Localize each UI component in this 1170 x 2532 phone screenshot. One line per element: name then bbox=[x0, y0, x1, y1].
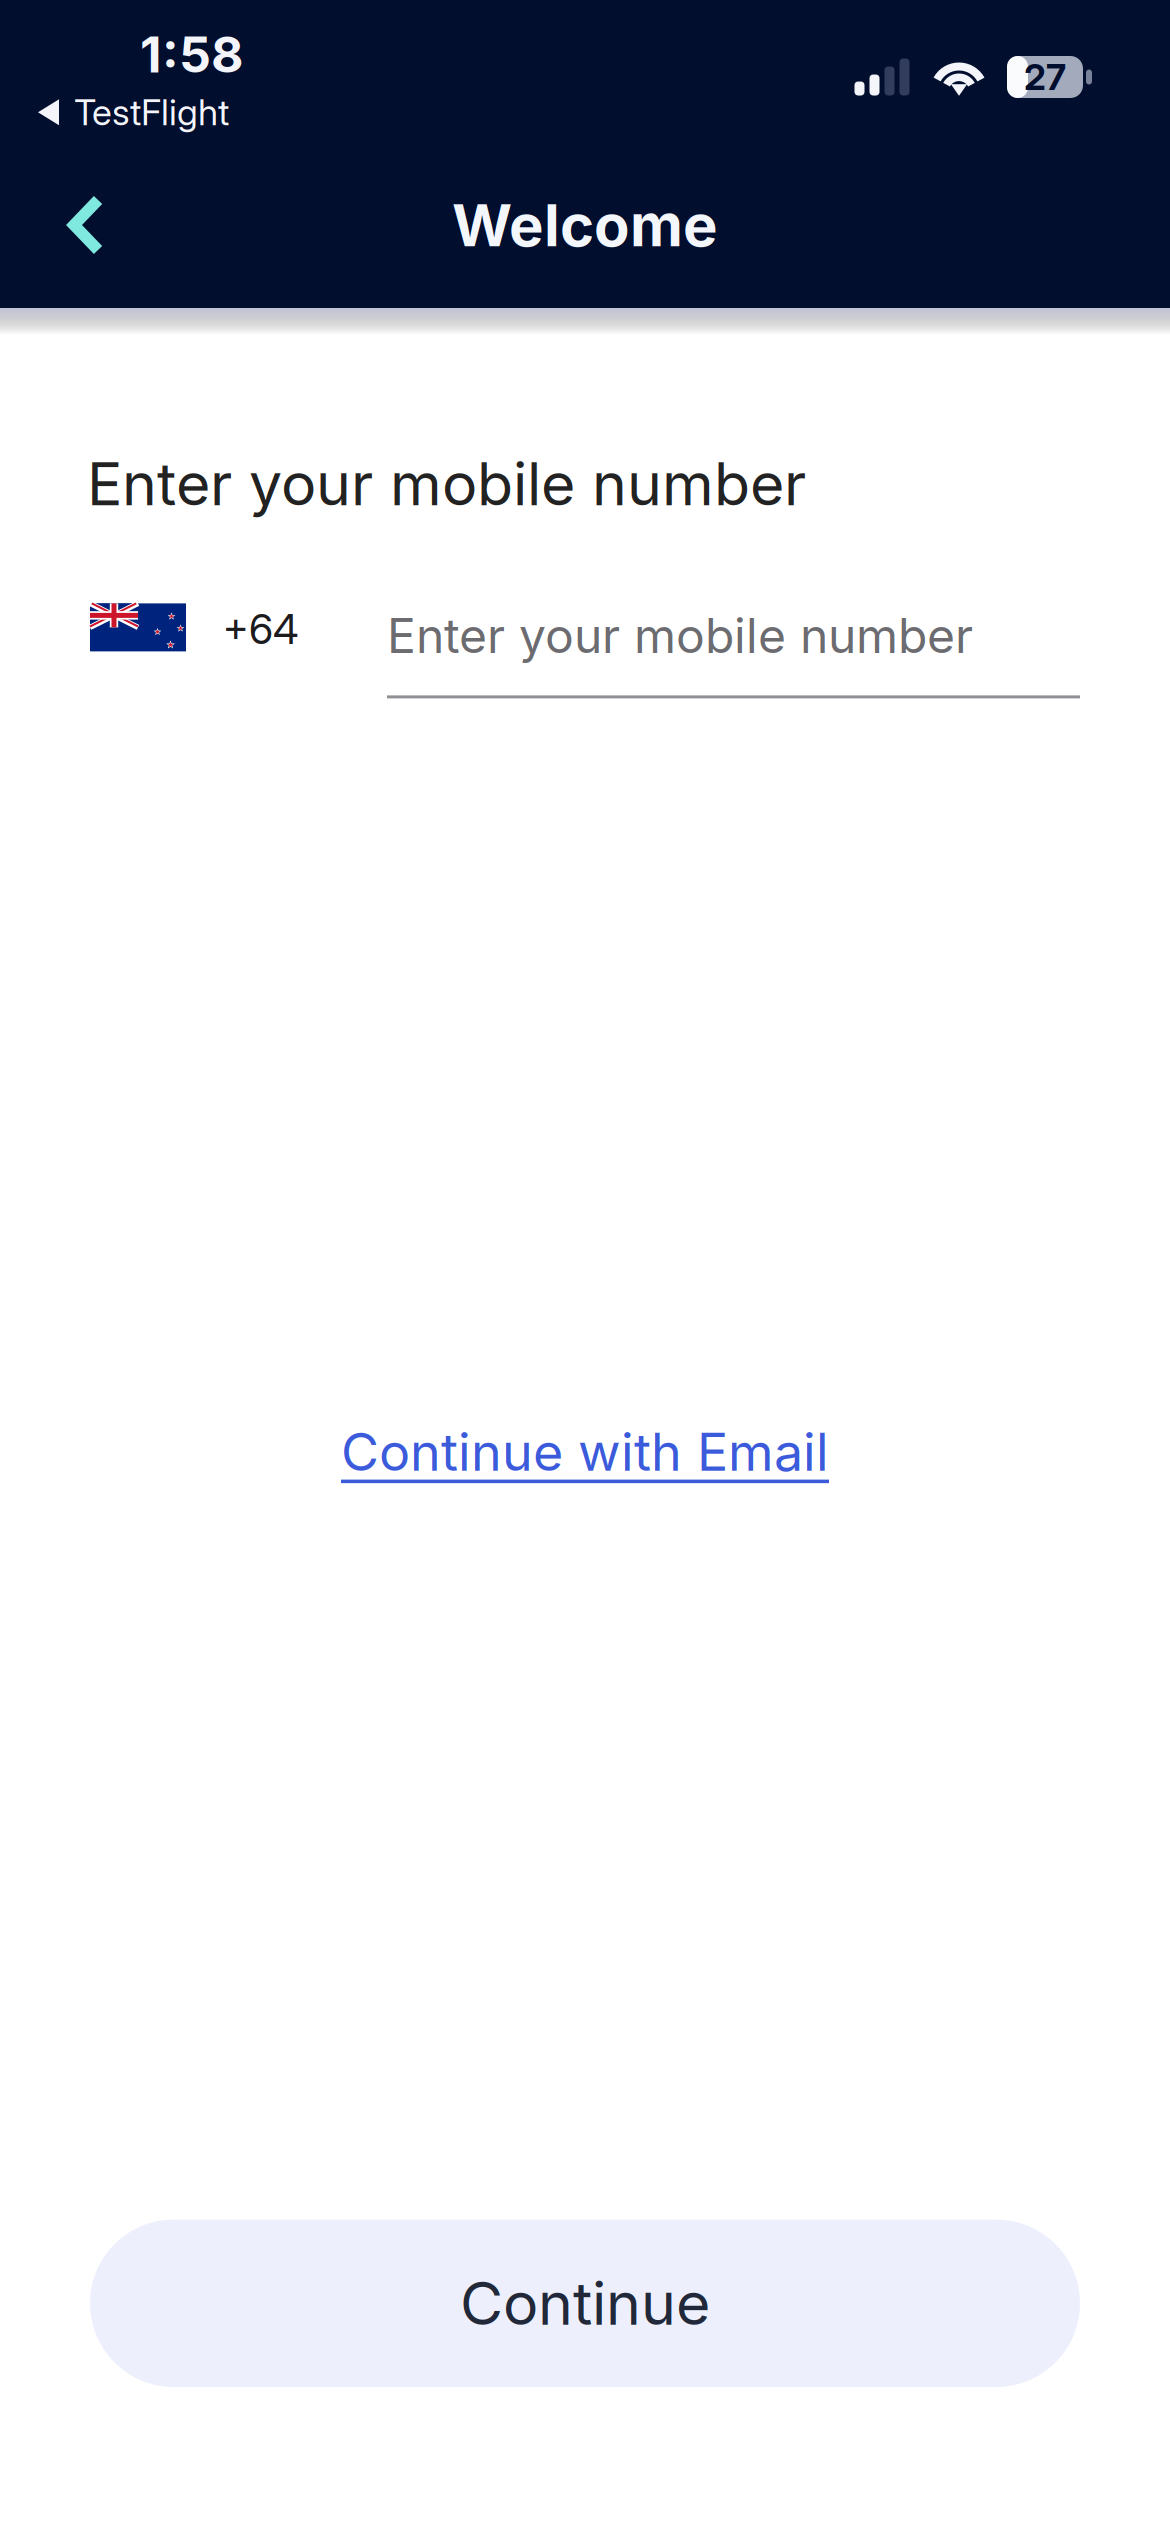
button[interactable]: Continue with Email bbox=[0, 1404, 1170, 1499]
button[interactable]: Country code, New Zealand, plus 64 bbox=[0, 591, 387, 654]
staticText: Welcome bbox=[452, 190, 718, 260]
staticText: TestFlight bbox=[74, 90, 229, 134]
staticText: +64 bbox=[223, 604, 298, 654]
staticText: Enter your mobile number bbox=[387, 606, 973, 664]
button[interactable]: Back bbox=[4, 165, 144, 285]
staticText: Continue bbox=[460, 2268, 710, 2339]
staticText: 1:58 bbox=[140, 24, 244, 84]
staticText: Continue with Email bbox=[341, 1420, 829, 1483]
staticText: 27 bbox=[1024, 55, 1066, 99]
button[interactable]: Continue bbox=[90, 2220, 1080, 2387]
staticText: Enter your mobile number bbox=[87, 448, 806, 519]
